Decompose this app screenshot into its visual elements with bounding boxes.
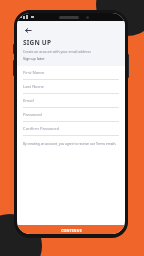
button[interactable]: Confirm Password (23, 122, 119, 136)
staticText: Create an account with your email addres… (23, 49, 91, 54)
button[interactable]: Password (23, 108, 119, 122)
button[interactable]: Last Name (23, 80, 119, 94)
staticText: CONTINUE (61, 228, 82, 233)
staticText: Email (23, 98, 34, 104)
staticText: Sign up later (23, 56, 45, 61)
button[interactable]: CONTINUE (17, 225, 125, 234)
button[interactable]: First Name (23, 66, 119, 80)
staticText: Last Name (23, 84, 44, 90)
staticText: SIGN UP (23, 38, 52, 47)
staticText: Password (23, 112, 42, 118)
button[interactable]: Email (23, 94, 119, 108)
staticText: By creating an account, you agree to rec… (23, 142, 119, 146)
button[interactable]: Sign up later (23, 56, 45, 61)
staticText: First Name (23, 70, 45, 76)
button[interactable]: Back (23, 25, 33, 35)
staticText: Confirm Password (23, 126, 59, 132)
